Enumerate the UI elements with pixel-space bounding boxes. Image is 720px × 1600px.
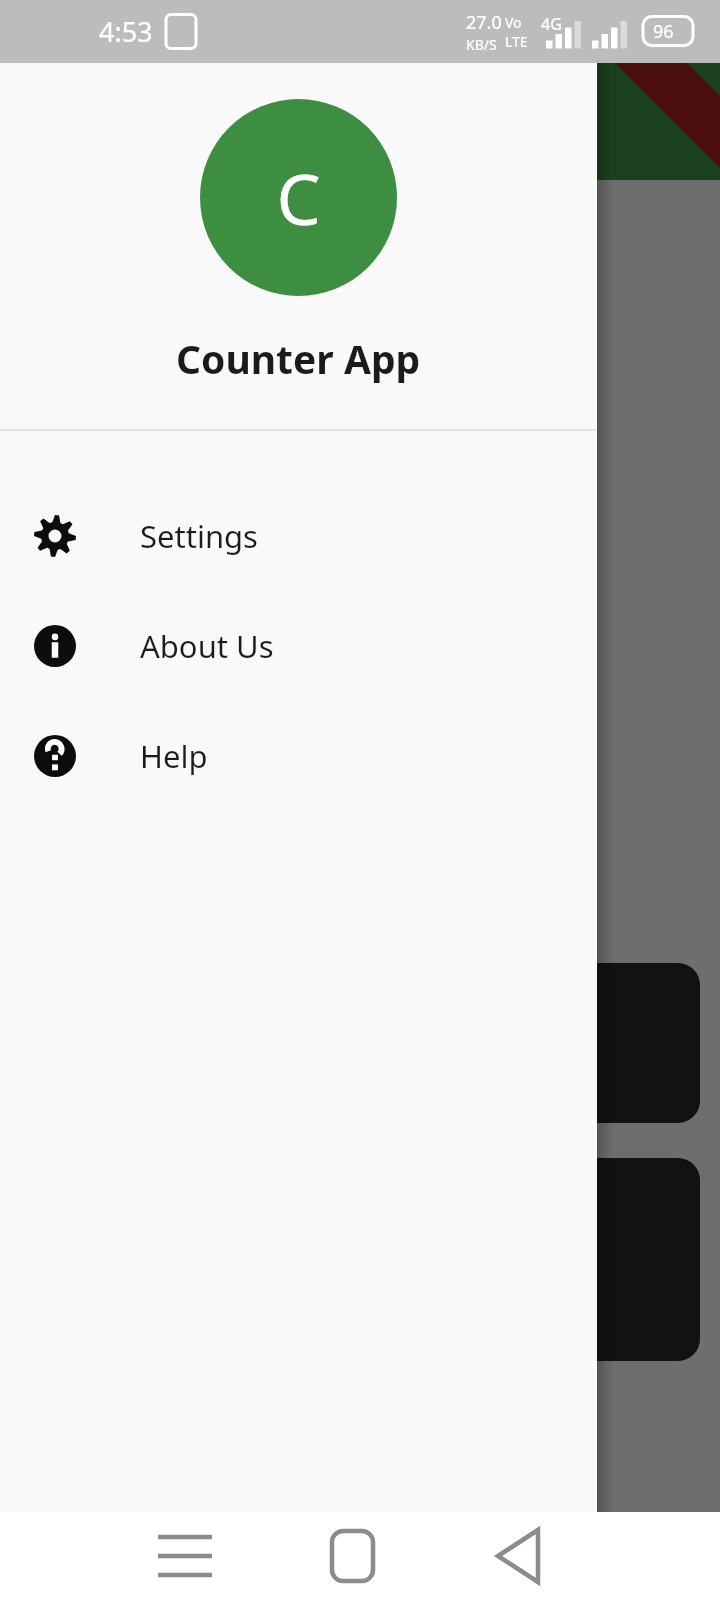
staticText: 4:53: [99, 13, 153, 50]
staticText: About Us: [140, 625, 274, 667]
other: Settings: [34, 515, 76, 557]
button[interactable]: About Us: [0, 591, 597, 701]
staticText: 27.0: [466, 10, 502, 35]
other: Help: [34, 735, 76, 777]
staticText: KB/S: [466, 35, 497, 54]
staticText: Help: [140, 735, 208, 777]
other: About Us: [34, 625, 76, 667]
staticText: 4G: [541, 13, 562, 35]
staticText: Vo: [505, 13, 522, 32]
staticText: LTE: [505, 32, 528, 51]
staticText: C: [276, 150, 321, 245]
button[interactable]: Settings: [0, 481, 597, 591]
staticText: DEBUG: [637, 0, 709, 68]
staticText: 96: [653, 19, 674, 44]
staticText: Counter App: [176, 332, 421, 385]
button[interactable]: Help: [0, 701, 597, 811]
staticText: Settings: [140, 515, 258, 557]
